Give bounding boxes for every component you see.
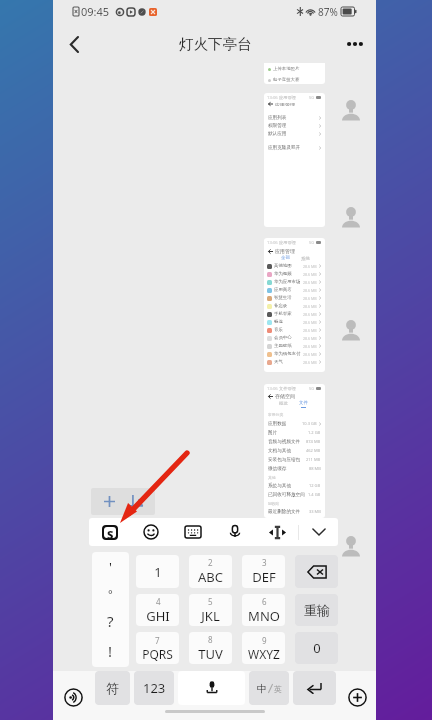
staticText: JKL <box>201 607 220 625</box>
button[interactable]: 上传本地照片 <box>264 63 325 84</box>
staticText: 33 MB <box>309 509 321 514</box>
staticText: 音乐 <box>274 327 283 333</box>
staticText: 华为钱包支付 <box>274 351 301 357</box>
staticText: 88 MB <box>309 466 321 471</box>
staticText: 默认应用 <box>268 131 287 137</box>
staticText: 存储空间 <box>275 393 295 399</box>
staticText: 5 <box>208 596 213 607</box>
button[interactable]: Back <box>57 27 91 61</box>
button[interactable]: Sogou input <box>89 518 130 546</box>
staticText: ! <box>108 641 113 661</box>
button[interactable]: Backspace <box>295 555 338 588</box>
button[interactable]: 中 <box>249 671 289 705</box>
button[interactable]: 符 <box>95 671 130 705</box>
staticText: 微信缓存 <box>268 466 287 472</box>
staticText: 会员中心 <box>274 335 292 341</box>
button[interactable]: 6 <box>242 594 285 626</box>
staticText: 畅连 <box>274 319 283 325</box>
staticText: 4 <box>156 596 161 607</box>
staticText: 回收站 <box>268 501 280 506</box>
staticText: 28.6 MB <box>303 352 317 357</box>
staticText: 已回收可释放空间 <box>268 492 305 498</box>
staticText: MNO <box>248 607 280 625</box>
button[interactable]: 4 <box>136 594 179 626</box>
button[interactable]: Emoji <box>130 518 172 546</box>
staticText: PQRS <box>142 646 173 662</box>
staticText: 13:06 <box>267 95 278 101</box>
staticText: 文档与其他 <box>268 448 291 454</box>
staticText: ' <box>109 558 112 576</box>
button[interactable]: 7 <box>136 632 179 664</box>
button[interactable]: Voice input <box>62 686 84 708</box>
staticText: 全部 <box>281 255 290 261</box>
staticText: 备忘录 <box>274 303 288 309</box>
staticText: 音频与视频文件 <box>268 439 301 445</box>
staticText: 5G <box>309 386 315 391</box>
button[interactable] <box>293 671 336 705</box>
button[interactable]: ' <box>92 552 129 667</box>
button[interactable]: 1 <box>136 555 179 588</box>
button[interactable]: Move cursor <box>256 518 298 546</box>
staticText: 应用管理 <box>279 240 296 245</box>
staticText: 10.3 GB <box>302 421 317 426</box>
staticText: 09:45 <box>81 4 110 19</box>
staticText: 874 MB <box>306 439 321 444</box>
button[interactable]: 0 <box>295 632 338 664</box>
staticText: 文件管理 <box>279 386 296 391</box>
staticText: 28.6 MB <box>303 264 317 269</box>
staticText: 28.6 MB <box>303 344 317 349</box>
button[interactable]: 5 <box>189 594 232 626</box>
staticText: 最近删除的文件 <box>268 509 301 515</box>
staticText: 6 <box>262 596 267 607</box>
button[interactable]: 8 <box>189 632 232 664</box>
button[interactable]: 9 <box>242 632 285 664</box>
staticText: 英 <box>274 684 282 694</box>
staticText: 中 <box>257 682 267 695</box>
staticText: 安装包与压缩包 <box>268 457 301 463</box>
button[interactable] <box>178 671 245 705</box>
button[interactable]: 3 <box>242 555 285 588</box>
button[interactable]: 13:06 <box>264 384 325 518</box>
staticText: 28.6 MB <box>303 328 317 333</box>
button[interactable] <box>91 488 155 515</box>
staticText: 28.6 MB <box>303 296 317 301</box>
button[interactable]: 13:06 <box>264 238 325 372</box>
button[interactable]: 123 <box>134 671 174 705</box>
button[interactable]: Add <box>346 686 368 708</box>
button[interactable]: 重输 <box>295 594 338 626</box>
staticText: 28.6 MB <box>303 360 317 365</box>
staticText: ° <box>108 586 113 601</box>
staticText: 权限管理 <box>268 123 287 129</box>
staticText: 应用管理 <box>275 248 295 254</box>
staticText: 文件 <box>299 400 308 406</box>
staticText: 1.2 GB <box>308 430 321 435</box>
staticText: 13:06 <box>267 240 278 246</box>
staticText: 1.4 GB <box>308 492 321 497</box>
staticText: 其他 <box>268 475 276 480</box>
staticText: 28.6 MB <box>303 312 317 317</box>
button[interactable]: Keyboard layout <box>172 518 214 546</box>
staticText: 5G <box>309 240 315 245</box>
staticText: 电子竞技大赛 <box>273 77 300 83</box>
staticText: 华为视频 <box>274 271 292 277</box>
staticText: 3 <box>262 557 267 568</box>
staticText: 123 <box>143 679 166 697</box>
staticText: 图片 <box>268 430 278 436</box>
staticText: 28.6 MB <box>303 304 317 309</box>
staticText: 5G <box>309 95 315 100</box>
staticText: S <box>107 527 114 538</box>
button[interactable]: Hide keyboard <box>299 518 338 546</box>
staticText: 上传本地照片 <box>273 66 300 72</box>
other: Backspace <box>307 565 327 579</box>
staticText: 概览 <box>279 401 288 407</box>
staticText: 应用列表 <box>268 115 287 121</box>
button[interactable]: More options <box>340 29 370 59</box>
staticText: TUV <box>198 645 223 663</box>
staticText: 13:06 <box>267 386 278 392</box>
button[interactable]: 2 <box>189 555 232 588</box>
button[interactable]: Voice input <box>214 518 256 546</box>
staticText: 9 <box>262 635 267 646</box>
button[interactable]: 13:06 <box>264 93 325 227</box>
staticText: 2 <box>208 557 213 568</box>
staticText: 应用商店 <box>274 287 292 293</box>
